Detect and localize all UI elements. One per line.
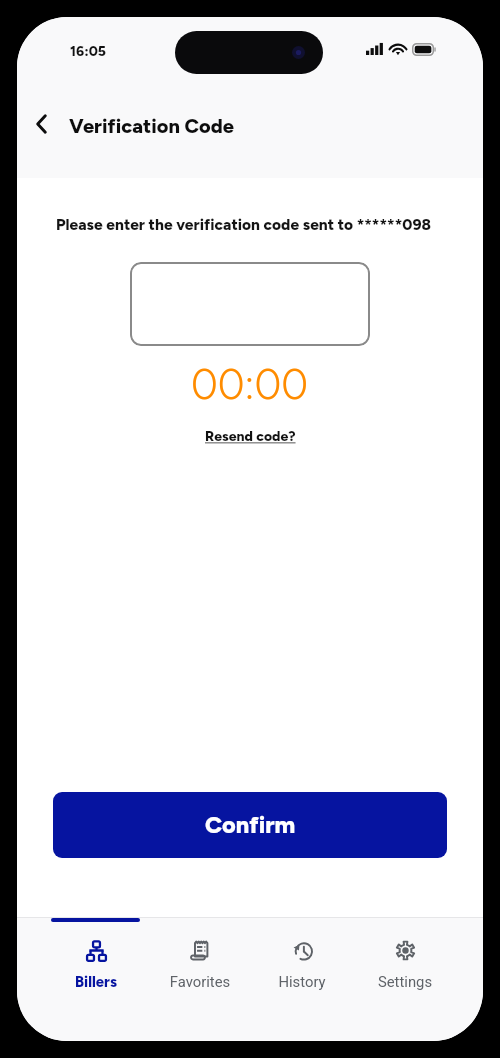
- staticText: History: [252, 973, 352, 990]
- button[interactable]: Settings: [355, 939, 455, 990]
- button[interactable]: Favorites: [150, 939, 250, 990]
- staticText: Favorites: [150, 973, 250, 990]
- button[interactable]: Billers: [46, 939, 146, 991]
- staticText: Resend code?: [205, 428, 296, 445]
- button[interactable]: History: [252, 939, 352, 990]
- button[interactable]: Resend code?: [205, 428, 296, 445]
- staticText: 16:05: [70, 43, 107, 60]
- staticText: 00:00: [191, 359, 309, 409]
- staticText: Confirm: [205, 811, 296, 839]
- staticText: Please enter the verification code sent …: [56, 215, 431, 234]
- button[interactable]: [130, 262, 370, 346]
- staticText: Verification Code: [69, 114, 234, 138]
- staticText: Billers: [46, 973, 146, 991]
- button[interactable]: Confirm: [53, 792, 447, 858]
- button[interactable]: Back: [17, 100, 65, 148]
- staticText: Settings: [355, 973, 455, 990]
